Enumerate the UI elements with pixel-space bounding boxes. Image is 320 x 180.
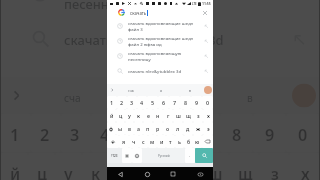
button[interactable]: ю <box>193 135 202 148</box>
button[interactable]: 2 <box>31 113 61 152</box>
button[interactable]: Русский <box>142 148 185 163</box>
staticText: скачать вдохновляющие шедэ <box>128 20 193 26</box>
button[interactable]: в <box>125 122 134 135</box>
button[interactable]: ф <box>107 122 116 135</box>
button[interactable]: Expand suggestions <box>108 86 116 94</box>
button[interactable]: ш <box>173 109 183 122</box>
button[interactable]: 0 <box>286 113 319 152</box>
staticText: я <box>122 138 126 145</box>
button[interactable]: Backspace <box>202 135 213 148</box>
button[interactable]: 8 <box>220 113 253 152</box>
button[interactable]: Clear search <box>201 9 209 17</box>
button[interactable]: 8 <box>180 96 191 109</box>
button[interactable]: Account <box>292 83 316 107</box>
button[interactable]: скачать вдохновляющие шедэ <box>107 33 213 48</box>
button[interactable]: Use suggestion <box>202 52 210 60</box>
button[interactable]: скачать <box>107 7 213 18</box>
button[interactable]: ы <box>116 122 125 135</box>
button[interactable]: Screenshot <box>195 169 205 179</box>
button[interactable]: г <box>163 109 173 122</box>
staticText: п <box>146 125 150 132</box>
button[interactable]: скачать вдохновляющие шедэ <box>107 18 213 33</box>
button[interactable]: ж <box>193 122 203 135</box>
button[interactable]: 5 <box>147 96 158 109</box>
button[interactable]: н <box>153 109 163 122</box>
button[interactable]: 6 <box>158 96 169 109</box>
button[interactable]: л <box>173 122 183 135</box>
button[interactable]: ц <box>28 152 55 180</box>
button[interactable]: п <box>143 122 153 135</box>
button[interactable]: щ <box>183 109 193 122</box>
button[interactable]: 2 <box>117 96 127 109</box>
button[interactable]: с <box>139 135 148 148</box>
button[interactable]: 3 <box>61 113 91 152</box>
button[interactable]: . <box>185 148 195 163</box>
button[interactable]: 5 <box>121 113 154 152</box>
button[interactable]: я <box>119 135 129 148</box>
button[interactable]: й <box>1 152 28 180</box>
button[interactable]: у <box>55 152 82 180</box>
button[interactable]: Recent apps <box>168 169 178 179</box>
button[interactable]: 4 <box>137 96 147 109</box>
staticText: 5 <box>133 122 145 143</box>
button[interactable]: щ <box>229 152 259 180</box>
button[interactable]: 7 <box>169 96 180 109</box>
button[interactable]: 1 <box>107 96 117 109</box>
button[interactable]: ч <box>129 135 139 148</box>
button[interactable]: з <box>259 152 289 180</box>
button[interactable]: скачать nlev&ytubblex 3d <box>1 14 319 59</box>
button[interactable]: р <box>153 122 163 135</box>
button[interactable]: о <box>163 122 173 135</box>
button[interactable]: Home <box>142 169 152 179</box>
button[interactable]: Account <box>204 86 212 94</box>
button[interactable]: Use suggestion <box>202 67 210 75</box>
staticText: в <box>247 89 253 104</box>
button[interactable]: е <box>143 109 153 122</box>
button[interactable]: ц <box>116 109 125 122</box>
button[interactable]: Back <box>115 169 125 179</box>
button[interactable]: Settings <box>122 148 132 163</box>
button[interactable]: 9 <box>253 113 286 152</box>
button[interactable]: н <box>139 152 169 180</box>
button[interactable]: ш <box>199 152 229 180</box>
button[interactable]: 4 <box>91 113 121 152</box>
button[interactable]: Shift <box>107 135 119 148</box>
button[interactable]: 3 <box>127 96 137 109</box>
button[interactable]: и <box>157 135 166 148</box>
button[interactable]: 0 <box>202 96 213 109</box>
button[interactable]: г <box>169 152 199 180</box>
button[interactable]: Emoji <box>132 148 142 163</box>
button[interactable]: у <box>125 109 134 122</box>
button[interactable]: з <box>193 109 203 122</box>
button[interactable]: х <box>289 152 319 180</box>
button[interactable]: скачать вдохновляющую <box>1 0 319 14</box>
button[interactable]: д <box>183 122 193 135</box>
staticText: 9 <box>265 122 277 143</box>
button[interactable]: 6 <box>154 113 187 152</box>
button[interactable]: б <box>184 135 193 148</box>
button[interactable]: Use suggestion <box>202 37 210 45</box>
button[interactable]: т <box>166 135 175 148</box>
button[interactable]: Use suggestion <box>202 22 210 30</box>
button[interactable]: Search <box>195 148 213 163</box>
staticText: 1 <box>110 99 114 106</box>
button[interactable]: 9 <box>191 96 202 109</box>
button[interactable]: скачать nlev&ytubblex 3d <box>107 63 213 78</box>
button[interactable]: к <box>134 109 143 122</box>
staticText: скачать вдохновляющие шедэ <box>128 35 193 41</box>
button[interactable]: х <box>203 109 213 122</box>
button[interactable]: й <box>107 109 116 122</box>
button[interactable]: скачать вдохновляющую <box>107 48 213 63</box>
button[interactable]: э <box>203 122 213 135</box>
button[interactable]: м <box>148 135 157 148</box>
button[interactable]: ?123 <box>107 148 122 163</box>
button[interactable]: 1 <box>1 113 31 152</box>
button[interactable]: ь <box>175 135 184 148</box>
button[interactable]: е <box>109 152 139 180</box>
button[interactable]: к <box>82 152 109 180</box>
button[interactable]: 7 <box>187 113 220 152</box>
button[interactable]: а <box>134 122 143 135</box>
